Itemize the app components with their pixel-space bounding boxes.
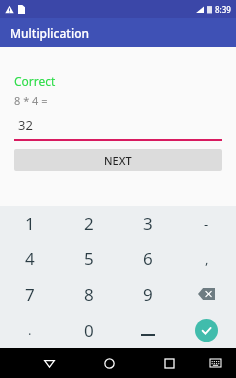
staticText: 5 [84, 247, 94, 270]
button[interactable]: Backspace [177, 276, 236, 312]
staticText: NEXT [104, 153, 132, 168]
staticText: 4 [25, 247, 35, 270]
button[interactable]: Recent apps [154, 348, 184, 378]
staticText: , [205, 250, 209, 268]
staticText: 3 [143, 212, 153, 235]
button[interactable]: 5 [59, 241, 118, 276]
staticText: 9 [143, 283, 153, 306]
button[interactable]: , [177, 241, 236, 276]
button[interactable]: Switch keyboard [203, 351, 227, 375]
button[interactable]: Enter [177, 312, 236, 348]
staticText: 1 [25, 212, 35, 235]
staticText: 32 [18, 116, 33, 134]
staticText: 2 [84, 212, 94, 235]
button[interactable]: . [0, 312, 59, 348]
button[interactable]: Back [34, 348, 64, 378]
button[interactable]: 1 [0, 206, 59, 241]
staticText: Multiplication [10, 25, 89, 41]
button[interactable] [118, 312, 177, 348]
button[interactable]: 0 [59, 312, 118, 348]
staticText: - [204, 215, 209, 233]
staticText: 7 [25, 283, 35, 306]
button[interactable]: 6 [118, 241, 177, 276]
button[interactable]: 4 [0, 241, 59, 276]
staticText: 0 [84, 319, 94, 342]
button[interactable]: 7 [0, 276, 59, 312]
button[interactable]: 9 [118, 276, 177, 312]
staticText: 8 [84, 283, 94, 306]
staticText: 8 * 4 = [14, 93, 48, 108]
button[interactable]: 3 [118, 206, 177, 241]
button[interactable]: NEXT [14, 149, 222, 171]
staticText: 8:39 [215, 4, 231, 15]
staticText: Correct [14, 73, 56, 89]
staticText: . [28, 321, 32, 339]
button[interactable]: Home [94, 348, 124, 378]
button[interactable]: 8 [59, 276, 118, 312]
staticText: 6 [143, 247, 153, 270]
button[interactable]: 2 [59, 206, 118, 241]
button[interactable]: - [177, 206, 236, 241]
